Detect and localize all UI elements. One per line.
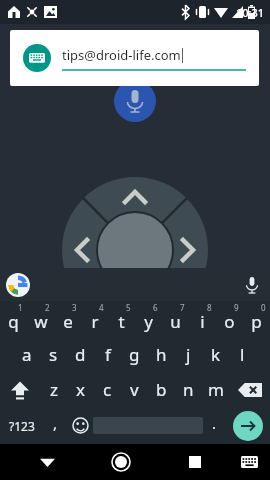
staticText: t [118,310,125,333]
button[interactable]: r [81,301,108,337]
staticText: q [8,310,19,333]
staticText: g [129,343,140,366]
button[interactable]: h [148,337,175,372]
staticText: 3 [72,302,77,313]
button[interactable]: k [202,337,229,372]
button[interactable]: i [189,301,216,337]
button[interactable]: Google [6,273,30,297]
button[interactable]: q [0,301,27,337]
button[interactable]: p [243,301,270,337]
button[interactable]: a [13,337,40,372]
button[interactable]: , [44,407,67,444]
staticText: 1 [18,302,23,313]
staticText: m [208,378,224,401]
staticText: 4 [99,302,104,313]
button[interactable]: f [94,337,121,372]
staticText: f [105,343,111,366]
staticText: w [34,310,48,333]
button[interactable]: Home [101,444,141,480]
button[interactable]: Enter [233,411,263,441]
staticText: e [63,310,73,333]
staticText: s [49,343,58,366]
staticText: 8 [207,302,212,313]
button[interactable]: tips@droid-life.com [10,30,259,86]
button[interactable]: j [175,337,202,372]
button[interactable]: c [94,372,121,407]
staticText: p [251,310,262,333]
staticText: x [76,378,85,401]
staticText: ?123 [9,418,35,434]
button[interactable]: y [135,301,162,337]
staticText: h [156,343,167,366]
button[interactable]: . [203,407,226,444]
staticText: 7 [180,302,185,313]
staticText: , [53,413,58,433]
button[interactable]: m [202,372,229,407]
staticText: tips@droid-life.com [62,46,181,64]
staticText: r [91,310,99,333]
button[interactable]: Recents [175,444,215,480]
button[interactable]: ?123 [0,407,44,444]
staticText: j [186,343,191,366]
staticText: 5 [126,302,131,313]
button[interactable]: x [67,372,94,407]
button[interactable]: Backspace [229,372,270,407]
staticText: n [183,378,194,401]
button[interactable]: z [40,372,67,407]
button[interactable]: g [121,337,148,372]
staticText: y [144,310,153,333]
button[interactable]: l [229,337,256,372]
button[interactable]: Shift [0,372,40,407]
button[interactable]: t [108,301,135,337]
staticText: 2 [45,302,50,313]
button[interactable]: v [121,372,148,407]
staticText: b [156,378,167,401]
staticText: k [211,343,221,366]
staticText: 6 [153,302,158,313]
button[interactable]: e [54,301,81,337]
button[interactable]: w [27,301,54,337]
staticText: a [22,343,32,366]
staticText: u [170,310,181,333]
staticText: . [212,413,217,433]
staticText: l [240,343,245,366]
button[interactable]: Switch keyboard [232,445,266,479]
button[interactable]: Emoji [67,407,93,444]
staticText: d [75,343,86,366]
button[interactable]: s [40,337,67,372]
staticText: o [224,310,235,333]
staticText: 9 [234,302,239,313]
staticText: v [130,378,139,401]
staticText: c [103,378,112,401]
button[interactable]: b [148,372,175,407]
button[interactable]: n [175,372,202,407]
button[interactable]: Hide keyboard [27,444,67,480]
button[interactable]: Voice typing [242,275,262,295]
button[interactable]: Voice input [114,80,156,122]
button[interactable]: o [216,301,243,337]
staticText: i [200,310,205,333]
button[interactable]: u [162,301,189,337]
staticText: 0 [261,302,266,313]
staticText: 10:31 [236,5,265,20]
staticText: z [50,378,58,401]
button[interactable]: d [67,337,94,372]
